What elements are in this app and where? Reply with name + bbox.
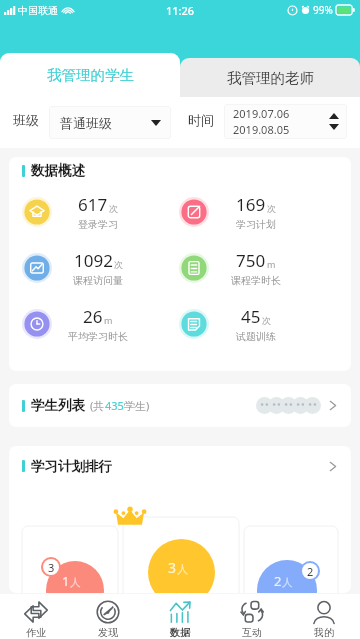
button[interactable]: 学习计划排行 [22,446,339,486]
staticText: 人 [70,576,81,589]
staticText: 互动 [242,626,262,639]
staticText: m [104,314,113,326]
staticText: 作业 [26,626,46,639]
staticText: 发现 [98,626,118,639]
button[interactable]: 我管理的老师 [180,58,360,97]
staticText: 次 [109,203,118,214]
button[interactable]: 作业 [0,594,72,639]
staticText: 学生列表 [31,397,85,414]
staticText: (共 [90,398,105,413]
staticText: 2019.08.05 [233,122,290,137]
staticText: 2019.07.06 [233,106,290,121]
button[interactable]: 普通班级 [49,106,171,139]
staticText: 人 [282,576,293,589]
staticText: 次 [267,203,276,214]
staticText: 2 [307,564,314,579]
button[interactable]: 互动 [216,594,288,639]
staticText: 2 [274,572,282,590]
staticText: 45 [241,305,261,328]
staticText: 登录学习 [78,218,118,231]
staticText: 次 [262,315,271,326]
staticText: 班级 [13,112,39,128]
staticText: 617 [78,193,108,216]
staticText: m [267,258,276,270]
staticText: 26 [83,305,103,328]
staticText: 435 [105,398,124,413]
staticText: 3 [168,558,177,577]
staticText: 时间 [188,112,214,128]
button[interactable]: 数据 [144,594,216,639]
staticText: 中国联通 [18,4,58,17]
staticText: 1092 [74,249,113,272]
staticText: 11:26 [166,3,195,18]
staticText: 我管理的学生 [47,66,134,84]
button[interactable]: 我的 [288,594,360,639]
button[interactable]: 我管理的学生 [0,53,180,97]
staticText: 数据 [170,626,190,639]
staticText: 次 [114,259,123,270]
staticText: 课程访问量 [73,274,123,287]
staticText: 1 [62,572,70,590]
button[interactable]: 学生列表 [9,384,351,427]
staticText: 学习计划 [236,218,276,231]
staticText: 169 [236,193,266,216]
staticText: 普通班级 [60,115,112,131]
staticText: 我管理的老师 [227,69,314,87]
staticText: 人 [177,562,189,576]
staticText: 课程学时长 [231,274,281,287]
button[interactable]: 发现 [72,594,144,639]
staticText: 750 [236,249,266,272]
staticText: 试题训练 [236,330,276,343]
staticText: 学生) [124,398,150,413]
button[interactable]: 2019.07.06 [224,104,347,139]
staticText: 平均学习时长 [68,330,128,343]
staticText: 99% [313,3,333,17]
staticText: 数据概述 [31,162,85,179]
staticText: 学习计划排行 [31,458,112,475]
other: Crown [115,508,145,525]
staticText: 3 [48,560,55,575]
staticText: 我的 [314,626,334,639]
